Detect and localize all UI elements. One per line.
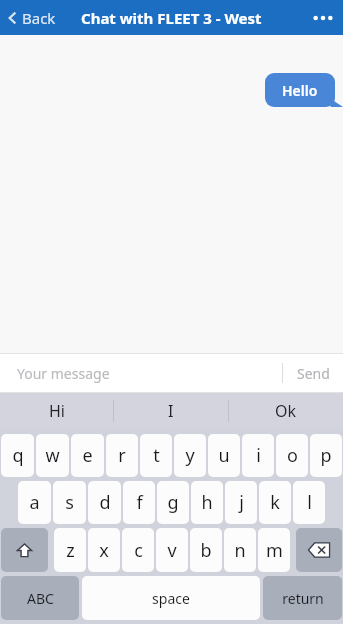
staticText: i bbox=[256, 443, 261, 468]
button[interactable]: c bbox=[122, 528, 154, 572]
button[interactable]: z bbox=[54, 528, 86, 572]
button[interactable]: w bbox=[36, 434, 69, 477]
button[interactable]: x bbox=[88, 528, 120, 572]
button[interactable]: h bbox=[191, 481, 223, 524]
staticText: g bbox=[167, 490, 179, 515]
button[interactable]: I bbox=[114, 393, 228, 429]
staticText: s bbox=[65, 490, 74, 515]
staticText: Hi bbox=[49, 400, 65, 422]
staticText: j bbox=[239, 490, 244, 515]
button[interactable]: t bbox=[140, 434, 172, 477]
staticText: u bbox=[218, 443, 230, 468]
button[interactable]: ABC bbox=[1, 576, 79, 620]
button[interactable]: Your message bbox=[0, 354, 282, 392]
staticText: a bbox=[29, 490, 40, 515]
button[interactable]: i bbox=[242, 434, 274, 477]
staticText: Chat with FLEET 3 - West bbox=[81, 8, 262, 28]
button[interactable] bbox=[265, 73, 343, 107]
staticText: p bbox=[320, 443, 332, 468]
button[interactable]: space bbox=[82, 576, 260, 620]
button[interactable]: r bbox=[106, 434, 138, 477]
staticText: h bbox=[201, 490, 213, 515]
staticText: d bbox=[99, 490, 111, 515]
button[interactable]: m bbox=[258, 528, 290, 572]
button[interactable]: o bbox=[276, 434, 308, 477]
button[interactable]: return bbox=[263, 576, 342, 620]
button[interactable]: Send bbox=[283, 354, 343, 392]
button[interactable]: Backspace bbox=[296, 528, 342, 572]
button[interactable]: p bbox=[310, 434, 342, 477]
staticText: m bbox=[266, 538, 283, 563]
staticText: t bbox=[153, 443, 160, 468]
button[interactable]: b bbox=[190, 528, 222, 572]
staticText: b bbox=[200, 538, 212, 563]
staticText: Back bbox=[22, 8, 56, 28]
staticText: Hello bbox=[282, 81, 318, 100]
staticText: I bbox=[168, 400, 174, 422]
button[interactable]: f bbox=[123, 481, 155, 524]
staticText: w bbox=[45, 443, 60, 468]
button[interactable]: j bbox=[225, 481, 257, 524]
button[interactable]: u bbox=[208, 434, 240, 477]
staticText: x bbox=[99, 538, 109, 563]
button[interactable]: y bbox=[174, 434, 206, 477]
button[interactable]: g bbox=[157, 481, 189, 524]
staticText: return bbox=[282, 589, 324, 608]
button[interactable]: e bbox=[71, 434, 104, 477]
staticText: Send bbox=[297, 364, 330, 383]
staticText: c bbox=[134, 538, 143, 563]
button[interactable]: More options bbox=[303, 0, 343, 35]
button[interactable]: q bbox=[1, 434, 34, 477]
button[interactable]: s bbox=[53, 481, 86, 524]
staticText: n bbox=[234, 538, 246, 563]
button[interactable]: Ok bbox=[229, 393, 343, 429]
staticText: f bbox=[136, 490, 143, 515]
button[interactable]: v bbox=[156, 528, 188, 572]
button[interactable]: d bbox=[88, 481, 121, 524]
button[interactable]: Back bbox=[8, 8, 56, 28]
staticText: Your message bbox=[17, 364, 110, 383]
staticText: space bbox=[152, 589, 190, 608]
button[interactable]: n bbox=[224, 528, 256, 572]
staticText: q bbox=[12, 443, 24, 468]
staticText: r bbox=[118, 443, 126, 468]
staticText: ABC bbox=[27, 589, 54, 608]
staticText: z bbox=[66, 538, 75, 563]
button[interactable]: a bbox=[18, 481, 51, 524]
button[interactable]: Shift bbox=[1, 528, 48, 572]
staticText: k bbox=[270, 490, 280, 515]
staticText: y bbox=[185, 443, 195, 468]
staticText: Ok bbox=[275, 400, 297, 422]
button[interactable]: l bbox=[293, 481, 325, 524]
staticText: o bbox=[287, 443, 298, 468]
button[interactable]: k bbox=[259, 481, 291, 524]
staticText: v bbox=[167, 538, 177, 563]
button[interactable]: Hi bbox=[0, 393, 113, 429]
staticText: l bbox=[307, 490, 312, 515]
staticText: e bbox=[82, 443, 93, 468]
